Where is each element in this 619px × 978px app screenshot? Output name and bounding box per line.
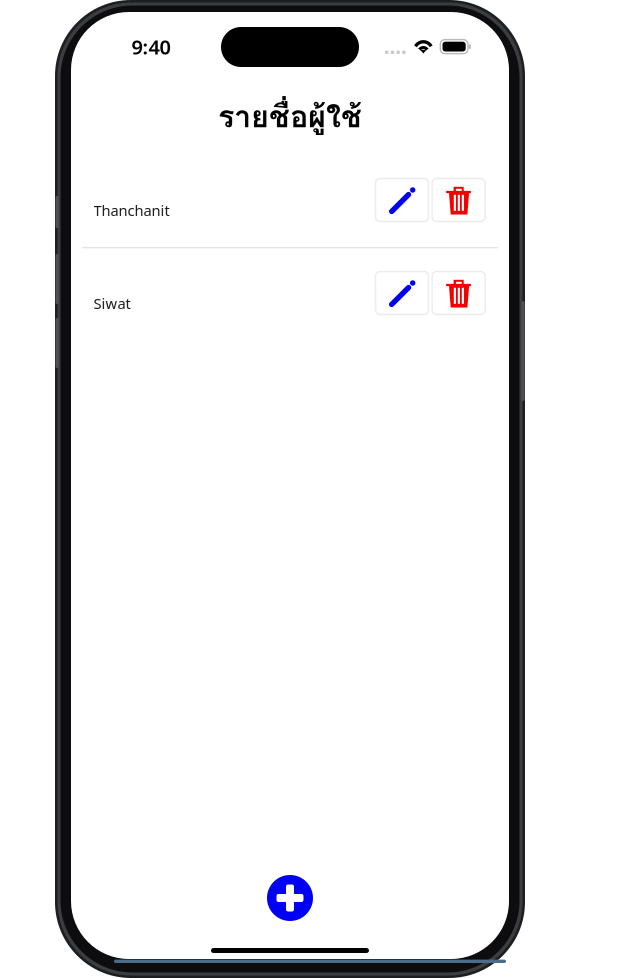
staticText: รายชื่อผู้ใช้ xyxy=(218,92,362,140)
button[interactable]: Edit xyxy=(375,178,428,221)
button[interactable]: Add user xyxy=(260,868,320,928)
staticText: Thanchanit xyxy=(93,200,169,220)
button[interactable]: Delete xyxy=(432,178,485,221)
button[interactable]: Edit xyxy=(375,271,428,314)
staticText: 9:40 xyxy=(131,33,170,60)
button[interactable]: Delete xyxy=(432,271,485,314)
staticText: Siwat xyxy=(93,293,130,313)
